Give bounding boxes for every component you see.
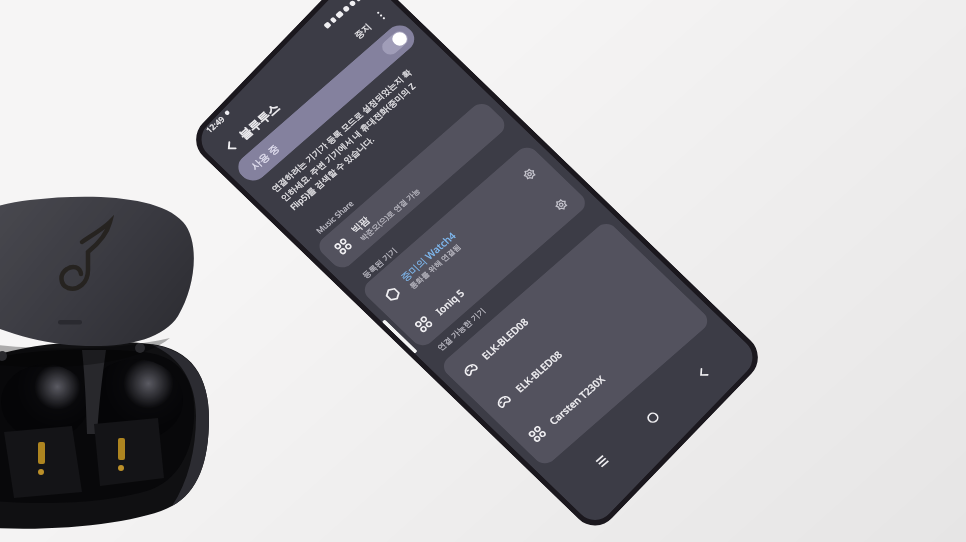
staticText: Ioniq 5	[416, 268, 484, 336]
staticText: Music Share	[294, 176, 375, 257]
staticText: 중미의 Watch4	[369, 197, 487, 315]
button[interactable]: 빅팜	[235, 9, 588, 362]
button[interactable]: Carsten T230X	[427, 194, 761, 528]
button[interactable]: 사용 중	[193, 0, 499, 276]
button[interactable]: 중미의 Watch4	[281, 53, 642, 414]
staticText: 빅팜	[337, 201, 384, 248]
staticText: Carsten T230X	[518, 341, 636, 459]
button[interactable]: Settings	[536, 179, 587, 230]
staticText: ELK-BLED08	[455, 288, 555, 389]
button[interactable]: Back	[200, 116, 262, 177]
button[interactable]: ELK-BLED08	[393, 162, 752, 520]
staticText: 12:49	[201, 109, 238, 147]
staticText: ELK-BLED08	[488, 321, 589, 421]
staticText: 사용 중	[231, 123, 298, 190]
button[interactable]: ELK-BLED08	[360, 130, 718, 487]
staticText: 중지	[342, 10, 383, 51]
button[interactable]: Ioniq 5	[317, 88, 669, 439]
staticText: 연결하려는 기기가 등록 모드로 설정되었는지 확인하세요. 주변 기기에서 내…	[195, 0, 507, 294]
button[interactable]: Back	[663, 334, 742, 413]
staticText: 박준오(으)로 연결 가능	[329, 153, 451, 275]
staticText: 블루투스	[214, 77, 304, 166]
button[interactable]: 중지	[332, 0, 393, 61]
button[interactable]: Recents	[563, 422, 642, 501]
staticText: 통화를 위해 연결됨	[382, 214, 487, 318]
staticText: 연결 가능한 기기	[410, 277, 512, 379]
button[interactable]: Home	[612, 378, 692, 457]
staticText: 등록된 기기	[341, 224, 418, 300]
button[interactable]: Bluetooth toggle	[364, 12, 426, 74]
button[interactable]: More options	[361, 0, 401, 35]
button[interactable]: Settings	[504, 149, 555, 200]
